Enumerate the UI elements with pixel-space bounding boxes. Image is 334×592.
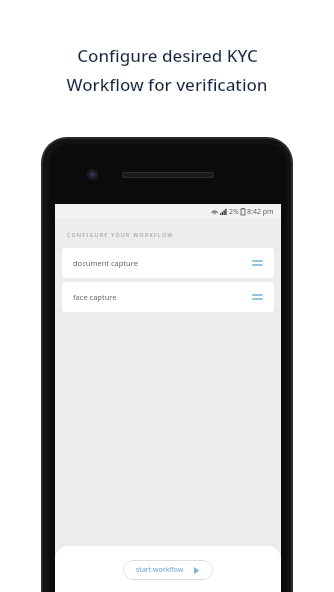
staticText: Workflow for verification — [66, 73, 268, 96]
staticText: document capture — [73, 258, 138, 268]
staticText: start workflow — [136, 565, 184, 575]
staticText: 2% — [229, 207, 239, 217]
button[interactable]: Reorder face capture — [252, 294, 263, 300]
staticText: Configure desired KYC — [77, 44, 258, 67]
staticText: 8:42 pm — [247, 207, 274, 217]
button[interactable]: face capture — [62, 282, 274, 312]
button[interactable]: Reorder document capture — [252, 260, 263, 266]
staticText: face capture — [73, 292, 117, 302]
staticText: C O N F I G U R E Y O U R W O R K F L O … — [67, 231, 173, 238]
button[interactable]: document capture — [62, 248, 274, 278]
button[interactable]: start workflow — [123, 560, 213, 580]
